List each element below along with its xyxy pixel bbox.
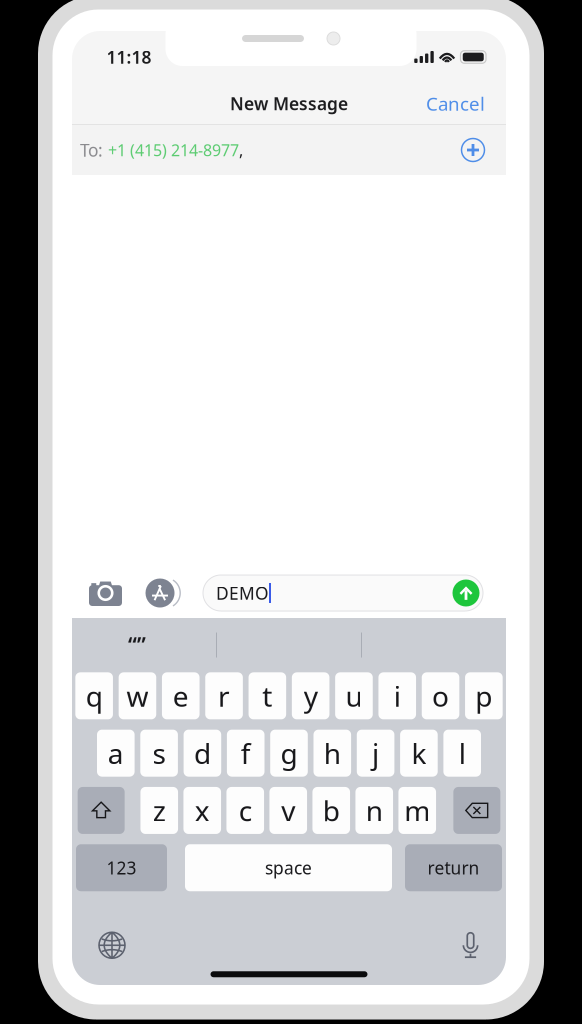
button[interactable]: Delete: [453, 787, 500, 834]
staticText: k: [411, 735, 426, 772]
button[interactable]: g: [270, 730, 308, 777]
button[interactable]: n: [355, 787, 393, 834]
staticText: u: [345, 677, 362, 714]
button[interactable]: o: [422, 672, 459, 719]
button[interactable]: l: [443, 730, 481, 777]
staticText: ,: [239, 139, 243, 161]
staticText: x: [195, 792, 210, 829]
staticText: m: [404, 792, 430, 829]
button[interactable]: r: [205, 672, 243, 719]
staticText: New Message: [230, 92, 348, 115]
staticText: y: [304, 677, 318, 714]
button[interactable]: return: [405, 844, 502, 891]
button[interactable]: Change keyboard: [94, 927, 130, 963]
staticText: To:: [80, 138, 103, 161]
button[interactable]: Cancel: [426, 91, 506, 116]
button[interactable]: d: [184, 730, 221, 777]
button[interactable]: w: [119, 672, 156, 719]
staticText: h: [324, 735, 341, 772]
button[interactable]: f: [227, 730, 264, 777]
staticText: b: [323, 792, 340, 829]
staticText: o: [432, 677, 449, 714]
button[interactable]: c: [226, 787, 264, 834]
staticText: c: [239, 792, 252, 829]
staticText: space: [265, 856, 312, 879]
button[interactable]: i: [378, 672, 416, 719]
staticText: w: [126, 677, 148, 714]
staticText: p: [475, 677, 492, 714]
button[interactable]: Shift: [78, 787, 125, 834]
staticText: return: [427, 856, 479, 879]
staticText: l: [459, 735, 466, 772]
staticText: g: [280, 735, 297, 772]
button[interactable]: j: [357, 730, 394, 777]
button[interactable]: 123: [76, 844, 167, 891]
staticText: j: [372, 735, 379, 772]
staticText: n: [366, 792, 383, 829]
button[interactable]: q: [75, 672, 113, 719]
button[interactable]: Camera: [89, 580, 122, 606]
staticText: “”: [128, 631, 146, 659]
button[interactable]: z: [140, 787, 178, 834]
button[interactable]: v: [269, 787, 307, 834]
staticText: 123: [106, 856, 136, 879]
staticText: DEMO: [216, 581, 269, 604]
button[interactable]: a: [97, 730, 135, 777]
button[interactable]: k: [400, 730, 438, 777]
staticText: z: [153, 792, 166, 829]
button[interactable]: e: [162, 672, 199, 719]
staticText: +1 (415) 214-8977: [108, 139, 239, 161]
staticText: Cancel: [426, 91, 485, 116]
button[interactable]: x: [183, 787, 221, 834]
button[interactable]: y: [292, 672, 329, 719]
button[interactable]: m: [398, 787, 436, 834]
button[interactable]: t: [248, 672, 286, 719]
staticText: t: [262, 677, 272, 714]
button[interactable]: b: [312, 787, 350, 834]
staticText: i: [394, 677, 401, 714]
button[interactable]: h: [313, 730, 351, 777]
staticText: f: [241, 735, 251, 772]
staticText: s: [153, 735, 166, 772]
button[interactable]: s: [140, 730, 178, 777]
button[interactable]: Add contact: [461, 138, 485, 162]
button[interactable]: space: [185, 844, 392, 891]
button[interactable]: Dictate: [457, 927, 484, 963]
staticText: v: [281, 792, 295, 829]
staticText: a: [108, 735, 124, 772]
staticText: r: [218, 677, 230, 714]
staticText: 11:18: [106, 45, 151, 68]
staticText: q: [86, 677, 103, 714]
button[interactable]: p: [465, 672, 503, 719]
staticText: d: [194, 735, 211, 772]
button[interactable]: Apps: [145, 576, 181, 609]
button[interactable]: u: [335, 672, 373, 719]
staticText: e: [173, 677, 189, 714]
